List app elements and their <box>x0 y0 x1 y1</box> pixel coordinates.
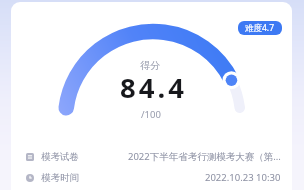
button[interactable]: 难度4.7 <box>238 21 282 35</box>
staticText: 模考时间 <box>41 172 79 184</box>
button[interactable]: 模考试卷 <box>0 146 304 167</box>
staticText: 2022下半年省考行测模考大赛（第... <box>128 150 281 163</box>
staticText: 模考试卷 <box>41 151 79 163</box>
staticText: /100 <box>141 108 161 121</box>
staticText: 84.4 <box>120 69 187 106</box>
staticText: 得分 <box>140 59 160 72</box>
staticText: 2022.10.23 10:30 <box>205 171 281 184</box>
button[interactable]: 模考时间 <box>0 167 304 188</box>
staticText: 难度4.7 <box>245 22 275 34</box>
